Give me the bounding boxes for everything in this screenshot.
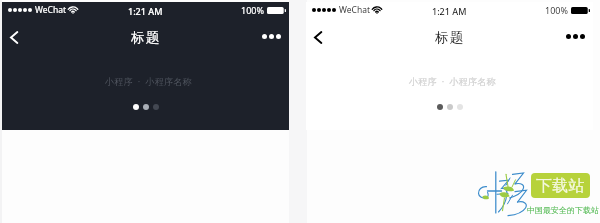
staticText: 标题: [435, 29, 465, 46]
staticText: 小程序 · 小程序名称: [409, 75, 496, 88]
staticText: 1:21 AM: [128, 5, 163, 17]
other: Page indicator: [437, 104, 463, 110]
staticText: 1:21 AM: [432, 5, 467, 17]
staticText: 中国最安全的下载站: [527, 205, 599, 215]
button[interactable]: Page 1: [437, 104, 443, 110]
staticText: 标题: [131, 29, 161, 46]
button[interactable]: More options: [564, 32, 587, 41]
other: Page indicator: [133, 104, 159, 110]
button[interactable]: Back: [307, 26, 329, 48]
staticText: 下载站: [536, 176, 585, 196]
staticText: 100%: [241, 4, 264, 16]
button[interactable]: Page 3: [457, 104, 463, 110]
staticText: 小程序 · 小程序名称: [105, 75, 192, 88]
button[interactable]: Page 2: [143, 104, 149, 110]
staticText: 100%: [545, 4, 568, 16]
button[interactable]: Page 1: [133, 104, 139, 110]
staticText: WeChat: [339, 4, 370, 16]
button[interactable]: Page 3: [153, 104, 159, 110]
staticText: WeChat: [35, 4, 66, 16]
button[interactable]: Page 2: [447, 104, 453, 110]
button[interactable]: Back: [3, 26, 25, 48]
button[interactable]: More options: [260, 32, 283, 41]
